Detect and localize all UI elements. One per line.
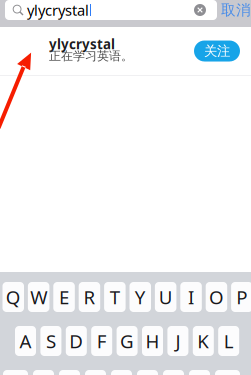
button[interactable] xyxy=(215,370,240,375)
staticText: L xyxy=(224,329,234,353)
staticText: 正在学习英语。 xyxy=(49,49,133,63)
button[interactable]: Q xyxy=(2,282,24,312)
button[interactable]: L xyxy=(218,326,239,356)
button[interactable]: O xyxy=(206,282,227,312)
button[interactable]: B xyxy=(137,370,158,375)
button[interactable]: W xyxy=(28,282,49,312)
staticText: D xyxy=(69,329,83,353)
button[interactable]: I xyxy=(180,282,202,312)
button[interactable]: 关注 xyxy=(194,40,240,61)
staticText: G xyxy=(120,329,134,353)
button[interactable]: F xyxy=(91,326,112,356)
staticText: Y xyxy=(135,285,146,309)
staticText: ylycrystal xyxy=(49,35,115,53)
staticText: S xyxy=(46,329,56,353)
staticText: I xyxy=(188,285,194,309)
staticText: P xyxy=(236,285,247,309)
button[interactable]: D xyxy=(66,326,87,356)
button[interactable]: K xyxy=(193,326,214,356)
staticText: W xyxy=(30,285,47,309)
staticText: U xyxy=(159,285,173,309)
button[interactable]: P xyxy=(231,282,251,312)
button[interactable]: V xyxy=(111,370,132,375)
staticText: E xyxy=(59,285,69,309)
button[interactable]: H xyxy=(142,326,163,356)
button[interactable]: A xyxy=(15,326,36,356)
button[interactable]: S xyxy=(40,326,61,356)
button[interactable]: G xyxy=(117,326,138,356)
staticText: J xyxy=(175,329,180,353)
button[interactable]: Y xyxy=(129,282,151,312)
staticText: ylycrystal xyxy=(27,0,89,20)
button[interactable]: M xyxy=(189,370,210,375)
button[interactable]: J xyxy=(167,326,188,356)
button[interactable]: E xyxy=(53,282,75,312)
staticText: Q xyxy=(6,285,21,309)
button[interactable]: ylycrystal xyxy=(0,27,251,75)
staticText: 关注 xyxy=(204,43,230,59)
button[interactable]: 取消 xyxy=(217,2,251,18)
staticText: O xyxy=(209,285,224,309)
button[interactable]: Clear text xyxy=(194,4,217,16)
button[interactable] xyxy=(3,370,28,375)
button[interactable]: N xyxy=(163,370,184,375)
button[interactable]: X xyxy=(59,370,80,375)
staticText: R xyxy=(83,285,95,309)
staticText: A xyxy=(19,329,31,353)
button[interactable]: C xyxy=(85,370,106,375)
staticText: F xyxy=(97,329,107,353)
button[interactable]: R xyxy=(79,282,100,312)
button[interactable]: U xyxy=(155,282,176,312)
staticText: K xyxy=(197,329,209,353)
button[interactable]: T xyxy=(104,282,126,312)
staticText: H xyxy=(145,329,159,353)
staticText: 取消 xyxy=(221,1,251,19)
button[interactable]: Z xyxy=(33,370,54,375)
staticText: T xyxy=(110,285,120,309)
